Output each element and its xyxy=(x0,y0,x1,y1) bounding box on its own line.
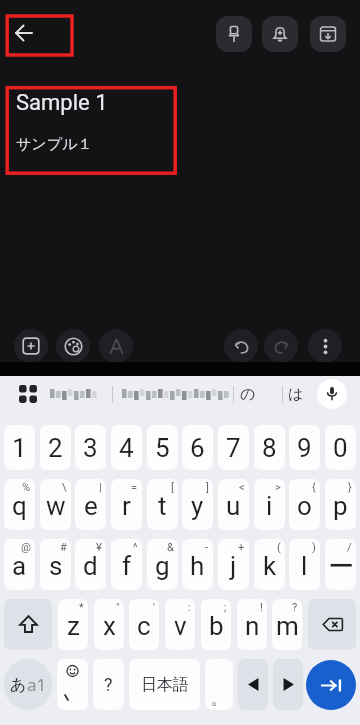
button[interactable]: あ xyxy=(4,659,52,710)
staticText: ? xyxy=(104,674,113,695)
staticText: [ xyxy=(171,481,174,494)
button[interactable]: > xyxy=(254,479,285,530)
button[interactable]: 2 xyxy=(40,425,71,470)
button[interactable]: @ xyxy=(4,539,35,590)
staticText: 0 xyxy=(333,433,348,463)
staticText: * xyxy=(79,601,84,614)
staticText: x xyxy=(103,611,116,641)
staticText: 8 xyxy=(262,433,277,463)
button[interactable]: 4 xyxy=(111,425,142,470)
staticText: : xyxy=(188,601,191,614)
staticText: | xyxy=(99,481,102,494)
staticText: w xyxy=(46,491,66,521)
button[interactable]: ) xyxy=(289,539,320,590)
button[interactable]: < xyxy=(218,479,249,530)
button[interactable]: ¥ xyxy=(75,539,106,590)
button[interactable]: 日本語 xyxy=(129,659,200,710)
button[interactable]: | xyxy=(75,479,106,530)
button[interactable] xyxy=(273,659,303,710)
button[interactable] xyxy=(238,659,268,710)
staticText: 9 xyxy=(297,433,312,463)
button[interactable]: ( xyxy=(254,539,285,590)
button[interactable] xyxy=(56,329,90,363)
button[interactable]: { xyxy=(289,479,320,530)
button[interactable] xyxy=(308,599,356,650)
staticText: { xyxy=(312,481,316,494)
staticText: % xyxy=(22,481,31,494)
button[interactable]: & xyxy=(147,539,178,590)
staticText: r xyxy=(122,491,131,521)
button[interactable] xyxy=(14,329,48,363)
button[interactable] xyxy=(264,329,298,363)
staticText: f xyxy=(122,551,132,581)
button[interactable]: ! xyxy=(237,599,267,650)
staticText: ( xyxy=(277,541,281,554)
button[interactable] xyxy=(306,660,356,710)
staticText: ; xyxy=(224,601,227,614)
staticText: o xyxy=(297,491,312,521)
staticText: / xyxy=(347,541,352,554)
button[interactable] xyxy=(4,13,44,53)
button[interactable]: 。 xyxy=(205,659,233,710)
staticText: は xyxy=(288,385,304,404)
staticText: サンプル１ xyxy=(16,135,93,154)
button[interactable]: ? xyxy=(272,599,302,650)
staticText: \ xyxy=(62,481,67,494)
button[interactable]: 3 xyxy=(75,425,106,470)
button[interactable]: 7 xyxy=(218,425,249,470)
button[interactable]: " xyxy=(94,599,124,650)
staticText: " xyxy=(116,601,120,614)
staticText: < xyxy=(239,481,245,494)
staticText: ¥ xyxy=(96,541,102,554)
button[interactable]: 9 xyxy=(289,425,320,470)
button[interactable] xyxy=(262,16,298,52)
button[interactable]: 8 xyxy=(254,425,285,470)
button[interactable] xyxy=(99,329,133,363)
button[interactable]: ^ xyxy=(111,539,142,590)
staticText: ! xyxy=(260,601,263,614)
button[interactable]: } xyxy=(325,479,356,530)
staticText: 3 xyxy=(83,433,98,463)
button[interactable] xyxy=(4,599,52,650)
button[interactable]: + xyxy=(218,539,249,590)
button[interactable]: - xyxy=(182,539,213,590)
button[interactable] xyxy=(216,16,252,52)
button[interactable]: ; xyxy=(201,599,231,650)
button[interactable]: ' xyxy=(129,599,159,650)
staticText: あ xyxy=(10,675,27,695)
staticText: 7 xyxy=(226,433,241,463)
staticText: ^ xyxy=(133,541,138,554)
staticText: e xyxy=(84,491,98,521)
staticText: t xyxy=(158,491,167,521)
button[interactable] xyxy=(19,385,37,403)
button[interactable]: 6 xyxy=(182,425,213,470)
button[interactable]: ] xyxy=(182,479,213,530)
button[interactable] xyxy=(57,659,88,710)
button[interactable]: [ xyxy=(147,479,178,530)
button[interactable]: 1 xyxy=(4,425,35,470)
staticText: z xyxy=(67,611,80,641)
button[interactable]: # xyxy=(40,539,71,590)
staticText: a1 xyxy=(27,673,47,696)
button[interactable] xyxy=(310,16,346,52)
button[interactable]: ? xyxy=(93,659,124,710)
button[interactable]: の xyxy=(234,385,262,404)
button[interactable] xyxy=(308,329,342,363)
staticText: 1 xyxy=(12,433,27,463)
staticText: s xyxy=(49,551,63,581)
staticText: n xyxy=(245,611,260,641)
staticText: i xyxy=(266,491,273,521)
button[interactable] xyxy=(224,329,258,363)
button[interactable]: \ xyxy=(40,479,71,530)
button[interactable]: : xyxy=(165,599,195,650)
button[interactable]: 5 xyxy=(147,425,178,470)
button[interactable]: * xyxy=(58,599,88,650)
button[interactable]: = xyxy=(111,479,142,530)
button[interactable] xyxy=(317,379,347,409)
button[interactable]: % xyxy=(4,479,35,530)
staticText: } xyxy=(348,481,352,494)
button[interactable]: / xyxy=(325,539,356,590)
button[interactable]: は xyxy=(283,385,309,404)
staticText: j xyxy=(230,551,237,581)
button[interactable]: 0 xyxy=(325,425,356,470)
